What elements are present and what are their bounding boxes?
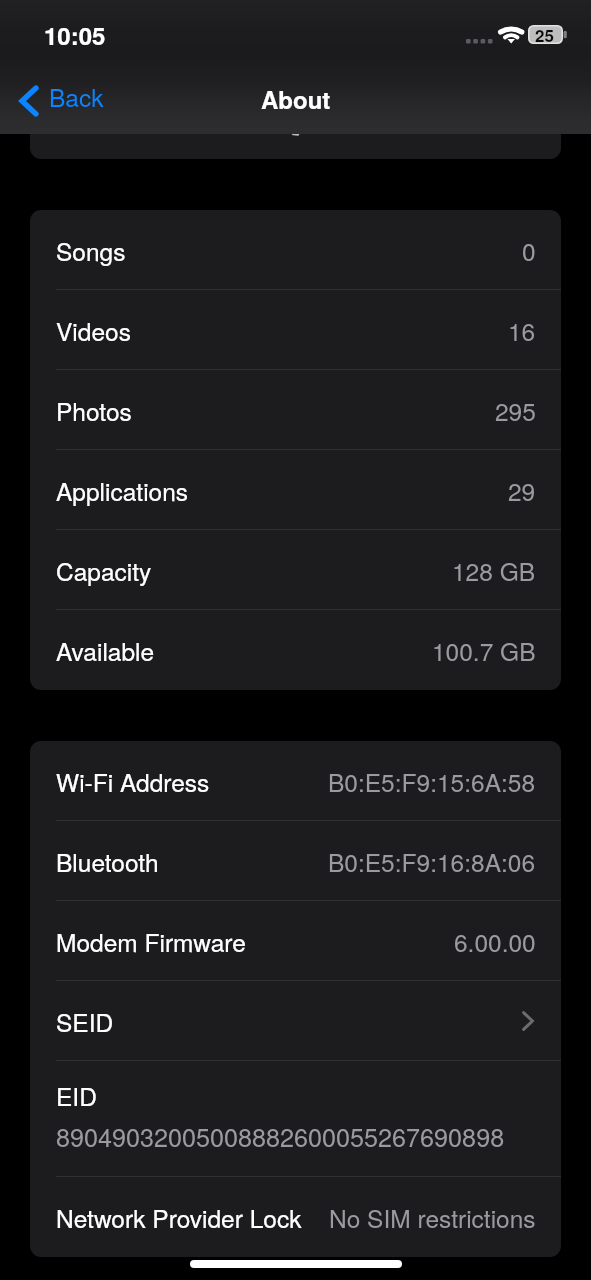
staticText: B0:E5:F9:16:8A:06 — [328, 844, 536, 879]
button[interactable]: Songs — [30, 210, 561, 290]
staticText: 89049032005008882600055267690898 — [56, 1118, 505, 1154]
staticText: Modem Firmware — [56, 924, 246, 959]
staticText: Network Provider Lock — [56, 1200, 302, 1235]
staticText: 16 — [508, 313, 536, 348]
button[interactable]: Capacity — [30, 530, 561, 610]
staticText: SEID — [56, 1004, 114, 1039]
staticText: Available — [56, 633, 155, 668]
staticText: 128 GB — [452, 553, 536, 588]
button[interactable]: SEID — [30, 981, 561, 1061]
staticText: Photos — [56, 393, 132, 428]
staticText: 25 — [535, 23, 554, 42]
button[interactable]: Modem Firmware — [30, 901, 561, 981]
staticText: EID — [56, 1078, 97, 1113]
staticText: Back — [49, 79, 104, 114]
button[interactable]: Back — [12, 77, 116, 124]
staticText: 100.7 GB — [432, 633, 536, 668]
button[interactable]: Videos — [30, 290, 561, 370]
staticText: B0:E5:F9:15:6A:58 — [328, 764, 536, 799]
button[interactable]: Wi-Fi Address — [30, 741, 561, 821]
staticText: Bluetooth — [56, 844, 159, 879]
staticText: Wi-Fi Address — [56, 764, 210, 799]
staticText: Applications — [56, 473, 189, 508]
other: Open SEID — [522, 1011, 534, 1031]
staticText: 10:05 — [44, 18, 106, 52]
button[interactable]: Photos — [30, 370, 561, 450]
staticText: 6.00.00 — [454, 924, 536, 959]
staticText: Capacity — [56, 553, 152, 588]
staticText: No SIM restrictions — [329, 1200, 536, 1235]
button[interactable]: Available — [30, 610, 561, 690]
staticText: 295 — [495, 393, 536, 428]
staticText: 0 — [522, 233, 536, 268]
button[interactable]: Network Provider Lock — [30, 1177, 561, 1257]
button[interactable]: Applications — [30, 450, 561, 530]
staticText: About — [261, 82, 331, 116]
staticText: Songs — [56, 233, 126, 268]
button[interactable]: Bluetooth — [30, 821, 561, 901]
staticText: Videos — [56, 313, 131, 348]
button[interactable]: EID — [30, 1061, 561, 1177]
staticText: 29 — [508, 473, 536, 508]
